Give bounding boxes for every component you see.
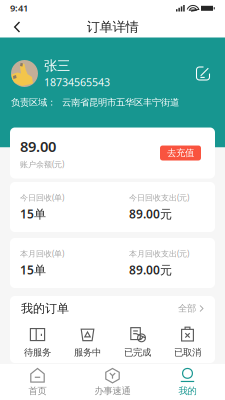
staticText: 去充值 bbox=[167, 147, 194, 159]
button[interactable]: 全部 bbox=[178, 303, 204, 314]
staticText: 今日回收(单) bbox=[20, 192, 64, 203]
staticText: 89.00元 bbox=[129, 206, 172, 222]
staticText: 89.00元 bbox=[129, 262, 172, 278]
button[interactable]: 办事速通 bbox=[75, 366, 150, 398]
staticText: 订单详情 bbox=[86, 19, 138, 35]
staticText: 15单 bbox=[20, 206, 46, 222]
button[interactable]: 已取消 bbox=[162, 325, 212, 359]
staticText: 9:41 bbox=[10, 2, 28, 14]
staticText: 负责区域： 云南省昆明市五华区丰宁街道 bbox=[11, 97, 179, 108]
staticText: 我的订单 bbox=[21, 301, 69, 316]
button[interactable]: 已完成 bbox=[112, 325, 162, 359]
button[interactable]: Edit profile bbox=[192, 62, 214, 84]
staticText: 本月回收(单) bbox=[20, 248, 64, 259]
staticText: 已完成 bbox=[124, 347, 151, 358]
staticText: 本月回收支出(元) bbox=[129, 248, 189, 259]
button[interactable]: 去充值 bbox=[160, 145, 201, 160]
button[interactable]: 我的 bbox=[150, 366, 225, 398]
button[interactable]: Back bbox=[5, 16, 29, 38]
staticText: 15单 bbox=[20, 262, 46, 278]
button[interactable]: 首页 bbox=[0, 366, 75, 398]
button[interactable]: 待服务 bbox=[12, 325, 62, 359]
staticText: 账户余额(元) bbox=[20, 159, 64, 169]
staticText: 待服务 bbox=[24, 347, 51, 358]
staticText: 服务中 bbox=[74, 347, 101, 358]
staticText: 今日回收支出(元) bbox=[129, 192, 189, 203]
button[interactable]: 服务中 bbox=[62, 325, 112, 359]
staticText: 办事速通 bbox=[94, 385, 130, 397]
staticText: 全部 bbox=[178, 303, 196, 314]
staticText: 89.00 bbox=[20, 136, 56, 156]
staticText: 我的 bbox=[178, 385, 196, 397]
staticText: 已取消 bbox=[174, 347, 201, 358]
staticText: 18734565543 bbox=[44, 75, 110, 89]
staticText: 首页 bbox=[28, 385, 46, 397]
staticText: 张三 bbox=[44, 58, 70, 74]
